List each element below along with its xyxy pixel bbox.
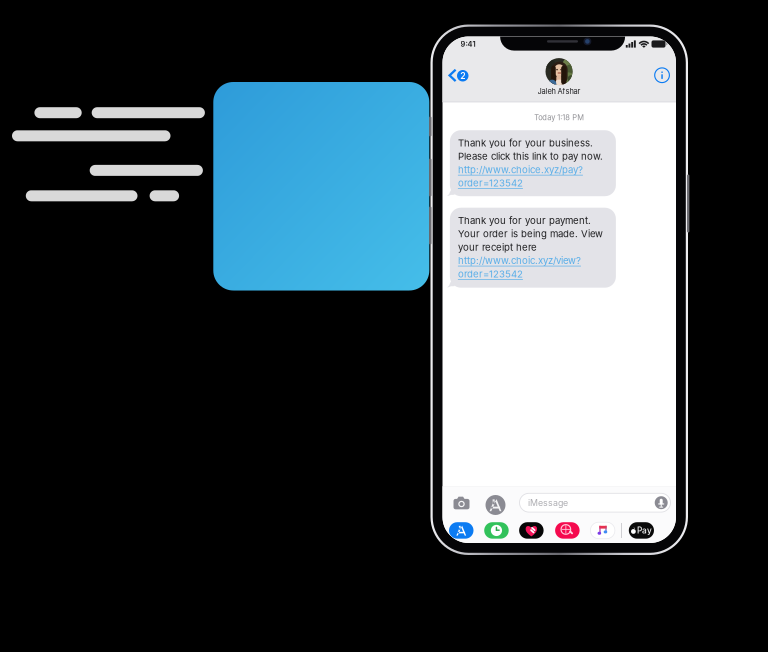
staticText: Please click this link to pay now. — [458, 150, 603, 162]
staticText: http://www.choic.xyz/view? — [458, 255, 581, 266]
staticText: 2 — [460, 70, 465, 81]
button[interactable]: Apps — [442, 36, 676, 543]
button[interactable]: Info — [442, 36, 676, 543]
button[interactable]: Camera — [442, 36, 676, 543]
button[interactable]: Back, 2 unread — [442, 36, 676, 543]
staticText: Jaleh Afshar — [537, 87, 580, 96]
staticText: order=123542 — [458, 268, 523, 280]
staticText: Pay — [637, 525, 652, 535]
button[interactable]: Images — [442, 36, 676, 543]
button[interactable]: iMessage — [442, 36, 676, 543]
staticText: http://www.choice.xyz/pay? — [458, 164, 583, 175]
staticText: 9:41 — [460, 39, 475, 48]
button[interactable]: App Store — [442, 36, 676, 543]
button[interactable]: Music — [442, 36, 676, 543]
staticText: your receipt here — [458, 241, 537, 253]
staticText: order=123542 — [458, 177, 523, 189]
button[interactable]: Recents — [442, 36, 676, 543]
button[interactable]: Apple Pay — [442, 36, 676, 543]
staticText: iMessage — [528, 497, 568, 508]
button[interactable]: Jaleh Afshar, contact details — [442, 36, 676, 543]
staticText: Thank you for your business. — [458, 137, 593, 149]
staticText: Your order is being made. View — [458, 228, 603, 240]
staticText: Today 1:18 PM — [534, 113, 584, 122]
staticText: Thank you for your payment. — [458, 215, 591, 226]
button[interactable]: Digital Touch — [442, 36, 676, 543]
